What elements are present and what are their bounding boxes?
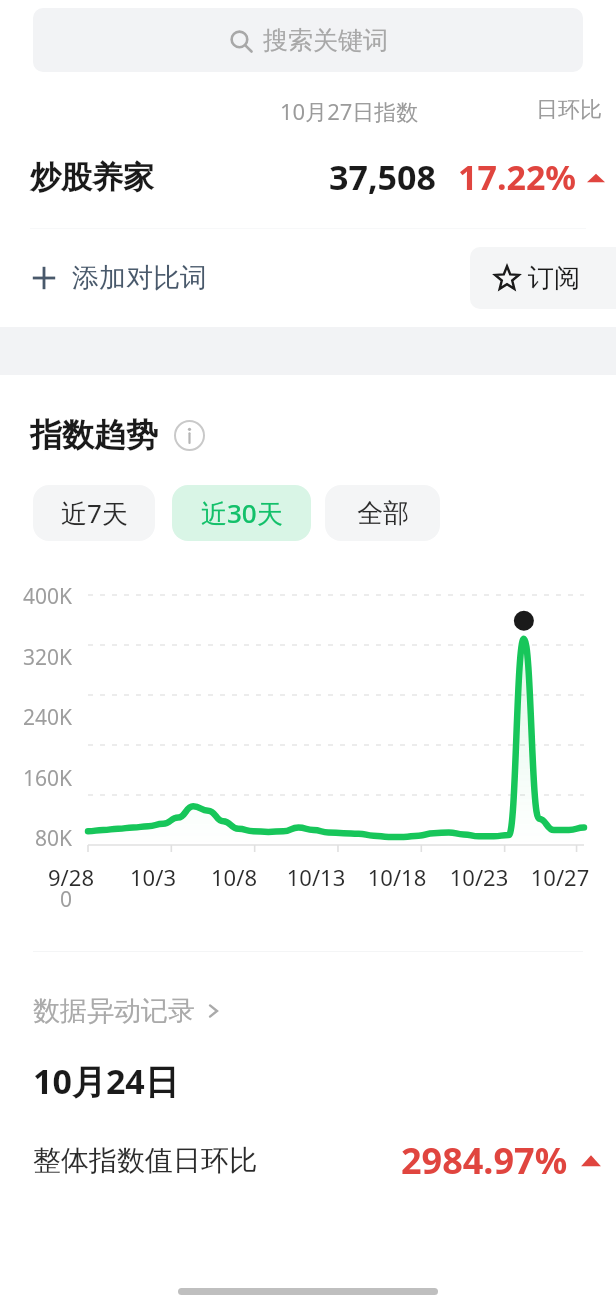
staticText: 10月24日 bbox=[33, 1058, 179, 1104]
staticText: 数据异动记录 bbox=[33, 994, 195, 1028]
button[interactable]: 添加对比词 bbox=[30, 261, 207, 295]
staticText: 10/18 bbox=[354, 862, 440, 892]
staticText: 全部 bbox=[357, 497, 409, 530]
staticText: 炒股养家 bbox=[30, 158, 154, 197]
staticText: 整体指数值日环比 bbox=[33, 1143, 257, 1178]
staticText: 320K bbox=[0, 643, 72, 672]
staticText: 9/28 bbox=[28, 862, 114, 892]
staticText: 近30天 bbox=[201, 495, 283, 531]
staticText: 0 bbox=[0, 885, 72, 914]
staticText: 添加对比词 bbox=[72, 261, 207, 295]
staticText: 近7天 bbox=[61, 495, 128, 531]
staticText: 160K bbox=[0, 764, 72, 793]
button[interactable]: 订阅 bbox=[470, 247, 616, 309]
staticText: 10/3 bbox=[110, 862, 196, 892]
staticText: 240K bbox=[0, 703, 72, 732]
staticText: 日环比 bbox=[490, 96, 602, 124]
staticText: 订阅 bbox=[528, 262, 580, 295]
button[interactable]: 全部 bbox=[325, 485, 440, 541]
staticText: 指数趋势 bbox=[30, 415, 158, 455]
staticText: 10/8 bbox=[191, 862, 277, 892]
button[interactable]: 说明 bbox=[174, 420, 205, 451]
staticText: 搜索关键词 bbox=[263, 25, 388, 56]
button[interactable]: 数据异动记录 bbox=[33, 994, 223, 1028]
staticText: 10/23 bbox=[436, 862, 522, 892]
staticText: 10/27 bbox=[517, 862, 603, 892]
button[interactable]: 近7天 bbox=[33, 485, 155, 541]
staticText: 10/13 bbox=[273, 862, 359, 892]
staticText: 80K bbox=[0, 824, 72, 853]
staticText: 17.22% bbox=[458, 154, 577, 200]
button[interactable]: 搜索关键词 bbox=[33, 8, 583, 72]
button[interactable]: 近30天 bbox=[172, 485, 311, 541]
staticText: 37,508 bbox=[329, 154, 436, 200]
staticText: 400K bbox=[0, 582, 72, 611]
staticText: 2984.97% bbox=[401, 1136, 568, 1185]
staticText: 10月27日指数 bbox=[280, 96, 490, 126]
